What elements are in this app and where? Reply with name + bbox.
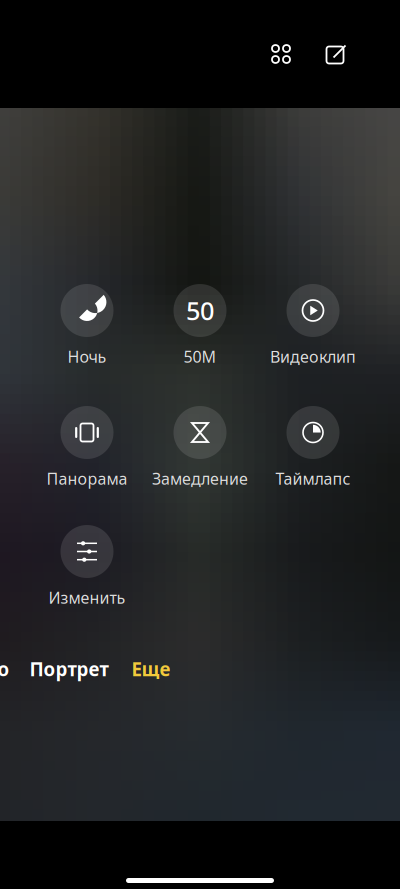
staticText: Еще <box>131 657 170 681</box>
button[interactable]: Еще <box>117 652 185 686</box>
staticText: 50M <box>183 346 216 367</box>
button[interactable]: Mode grid <box>260 33 302 75</box>
button[interactable]: Фото <box>0 652 21 686</box>
button[interactable]: Edit modes <box>315 33 357 75</box>
button[interactable]: 50 <box>143 284 256 364</box>
staticText: Замедление <box>152 468 248 489</box>
button[interactable]: Замедление <box>143 406 256 486</box>
staticText: Фото <box>0 657 9 681</box>
button[interactable]: Таймлапс <box>256 406 369 486</box>
staticText: Таймлапс <box>275 468 350 489</box>
staticText: Портрет <box>29 657 108 681</box>
button[interactable]: Ночь <box>30 284 143 364</box>
button[interactable]: Видеоклип <box>256 284 369 364</box>
staticText: Изменить <box>48 587 125 608</box>
button[interactable]: Портрет <box>21 652 117 686</box>
button[interactable]: Изменить <box>30 525 143 605</box>
staticText: 50 <box>186 294 214 327</box>
staticText: Видеоклип <box>270 346 356 367</box>
staticText: Панорама <box>46 468 127 489</box>
staticText: Ночь <box>67 346 106 367</box>
button[interactable]: Панорама <box>30 406 143 486</box>
